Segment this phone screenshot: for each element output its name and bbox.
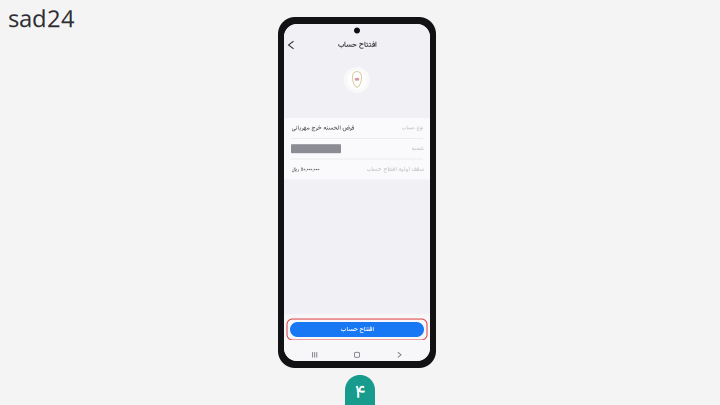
staticText: نوع حساب: [401, 124, 423, 132]
staticText: ۴: [355, 380, 365, 405]
staticText: قرض الحسنه خرج مهربانی: [291, 123, 354, 133]
staticText: سقف اولیه افتتاح حساب: [366, 165, 423, 174]
staticText: افتتاح حساب: [337, 39, 376, 50]
button[interactable]: Back: [284, 38, 297, 52]
button[interactable]: افتتاح حساب: [287, 319, 427, 340]
staticText: افتتاح حساب: [340, 325, 374, 334]
staticText: ۵۰٬۰۰۰٬۰۰۰ ریال: [291, 165, 319, 173]
staticText: sad24: [8, 2, 75, 34]
staticText: شعبه: [411, 145, 423, 153]
